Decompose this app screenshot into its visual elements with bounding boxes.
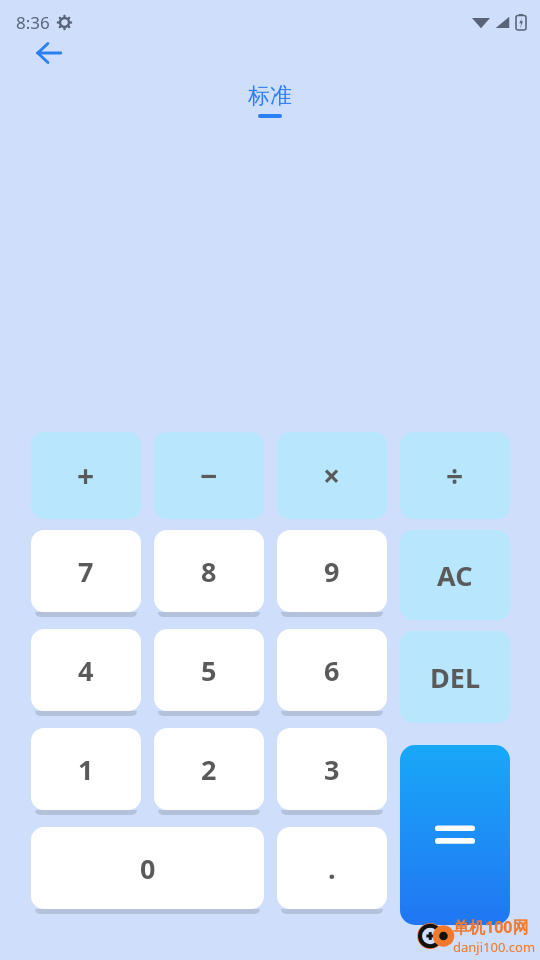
button[interactable]: 1	[31, 728, 141, 810]
staticText: 3	[324, 751, 340, 788]
staticText: +	[77, 455, 95, 496]
staticText: 9	[324, 553, 340, 590]
button[interactable]: 3	[277, 728, 387, 810]
staticText: ÷	[446, 455, 464, 496]
button[interactable]: +	[31, 432, 141, 519]
staticText: 4	[78, 652, 94, 689]
button[interactable]: 7	[31, 530, 141, 612]
button[interactable]: 0	[31, 827, 264, 909]
button[interactable]: Equals	[400, 745, 510, 925]
staticText: danji100.com	[453, 938, 536, 956]
button[interactable]: 4	[31, 629, 141, 711]
button[interactable]: 8	[154, 530, 264, 612]
staticText: DEL	[430, 659, 480, 696]
staticText: .	[328, 850, 336, 887]
staticText: 1	[78, 751, 94, 788]
button[interactable]: Back	[26, 30, 72, 76]
staticText: 单机100网	[453, 916, 529, 938]
staticText: 0	[140, 850, 156, 887]
staticText: 标准	[248, 82, 292, 110]
button[interactable]: 5	[154, 629, 264, 711]
button[interactable]: 标准	[248, 82, 292, 118]
button[interactable]: 6	[277, 629, 387, 711]
button[interactable]: 2	[154, 728, 264, 810]
button[interactable]: DEL	[400, 631, 510, 723]
staticText: −	[200, 455, 218, 496]
staticText: 7	[78, 553, 94, 590]
button[interactable]: 9	[277, 530, 387, 612]
button[interactable]: ÷	[400, 432, 510, 519]
staticText: 6	[324, 652, 340, 689]
staticText: 8:36	[16, 11, 50, 34]
button[interactable]: ×	[277, 432, 387, 519]
staticText: AC	[437, 557, 473, 594]
button[interactable]: .	[277, 827, 387, 909]
staticText: ×	[323, 455, 341, 496]
staticText: 5	[201, 652, 217, 689]
button[interactable]: AC	[400, 530, 510, 620]
button[interactable]: −	[154, 432, 264, 519]
staticText: 2	[201, 751, 217, 788]
staticText: 8	[201, 553, 217, 590]
